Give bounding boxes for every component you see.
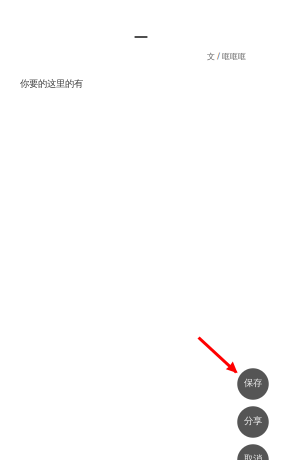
- button[interactable]: 保存: [237, 368, 269, 400]
- staticText: 分享: [244, 415, 262, 427]
- staticText: 你要的这里的有: [20, 78, 83, 89]
- button[interactable]: 取消: [237, 444, 269, 460]
- button[interactable]: 分享: [237, 406, 269, 438]
- staticText: 取消: [244, 453, 262, 460]
- staticText: 保存: [244, 377, 262, 389]
- staticText: 文 / 哐哐哐: [207, 51, 246, 62]
- button[interactable]: 文 / 哐哐哐: [207, 51, 246, 62]
